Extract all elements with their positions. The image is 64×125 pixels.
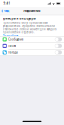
staticText: Погода bbox=[8, 51, 17, 54]
button[interactable]: Сообщения bbox=[0, 36, 64, 42]
staticText: Подробнее… bbox=[3, 34, 20, 38]
staticText: Уведомления bbox=[23, 9, 41, 13]
staticText: Приложения могут присылать Вам уведомлен… bbox=[3, 21, 57, 34]
button[interactable]: Назад bbox=[1, 8, 10, 14]
button[interactable]: Погода bbox=[0, 49, 64, 55]
staticText: 9:41 bbox=[3, 2, 10, 5]
button[interactable]: Подробнее… bbox=[3, 34, 20, 38]
staticText: Сообщения bbox=[8, 38, 24, 41]
staticText: Почта bbox=[8, 44, 15, 48]
staticText: Назад bbox=[4, 9, 10, 13]
button[interactable]: Почта bbox=[0, 43, 64, 49]
staticText: Тримеры и аксессуары bbox=[3, 17, 36, 20]
